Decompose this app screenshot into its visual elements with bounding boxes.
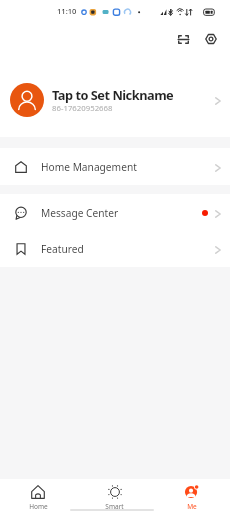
staticText: Tap to Set Nickname [52, 86, 174, 103]
button[interactable]: Home [0, 479, 76, 512]
staticText: Message Center [41, 206, 119, 220]
button[interactable]: Tap to Set Nickname [0, 72, 230, 128]
button[interactable]: Me [153, 479, 230, 512]
staticText: Me [187, 502, 197, 511]
staticText: 86-17620952668 [52, 103, 113, 114]
button[interactable]: Message Center [0, 194, 230, 231]
button[interactable]: Settings [197, 25, 225, 53]
staticText: Home [29, 502, 48, 511]
button[interactable]: Scan [169, 25, 197, 53]
staticText: 11:10 [57, 6, 77, 16]
staticText: Featured [41, 242, 84, 256]
staticText: Smart [105, 502, 124, 511]
button[interactable]: Featured [0, 230, 230, 267]
staticText: Home Management [41, 160, 137, 174]
button[interactable]: Smart [76, 479, 153, 512]
button[interactable]: Home Management [0, 148, 230, 185]
